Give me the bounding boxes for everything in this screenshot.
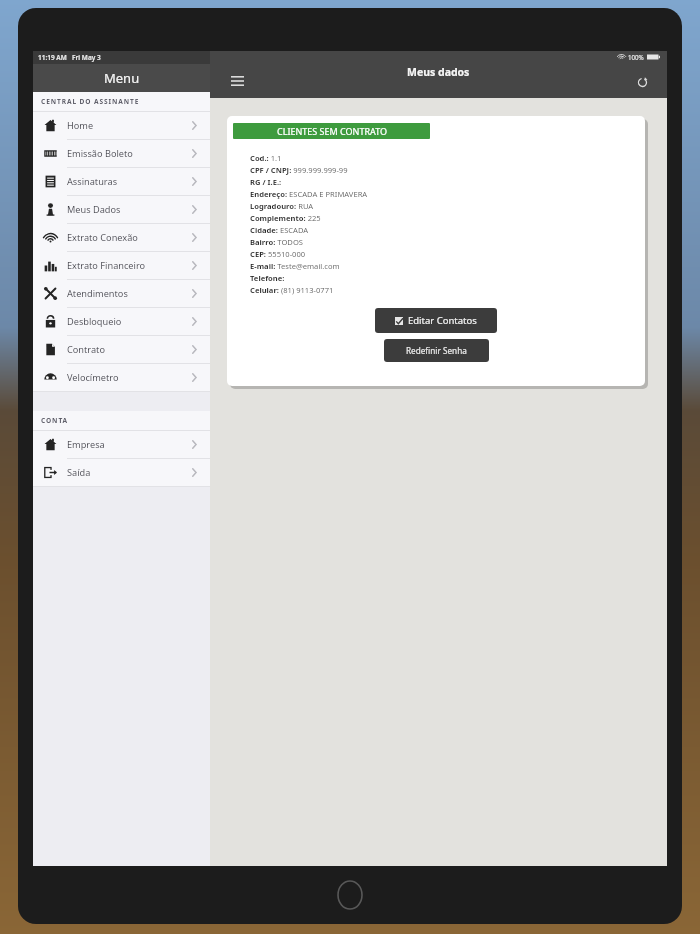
staticText: Saída xyxy=(67,466,91,479)
staticText: Atendimentos xyxy=(67,287,128,300)
staticText: CLIENTES SEM CONTRATO xyxy=(277,125,387,137)
staticText: Home xyxy=(67,119,94,132)
staticText: Empresa xyxy=(67,438,105,451)
button[interactable]: Emissão Boleto xyxy=(33,140,210,168)
staticText: 100% xyxy=(628,53,644,61)
button[interactable]: Menu xyxy=(226,70,248,92)
staticText: Menu xyxy=(104,69,140,87)
staticText: Desbloqueio xyxy=(67,315,122,328)
staticText: Meus Dados xyxy=(67,203,121,216)
button[interactable]: Empresa xyxy=(33,431,210,459)
button[interactable]: Assinaturas xyxy=(33,168,210,196)
staticText: Extrato Financeiro xyxy=(67,259,146,272)
staticText: 11:19 AM xyxy=(38,53,67,62)
staticText: Assinaturas xyxy=(67,175,118,188)
staticText: E-mail: Teste@email.com xyxy=(250,261,340,271)
staticText: Bairro: TODOS xyxy=(250,237,304,247)
staticText: Emissão Boleto xyxy=(67,147,133,160)
staticText: Fri May 3 xyxy=(72,53,101,62)
staticText: Telefone: xyxy=(250,273,285,283)
staticText: CONTA xyxy=(41,416,69,425)
staticText: Celular: (81) 9113-0771 xyxy=(250,285,334,295)
staticText: Cod.: 1.1 xyxy=(250,153,282,163)
staticText: Velocímetro xyxy=(67,371,119,384)
button[interactable]: Redefinir Senha xyxy=(384,339,489,362)
button[interactable]: Desbloqueio xyxy=(33,308,210,336)
staticText: Extrato Conexão xyxy=(67,231,138,244)
staticText: CPF / CNPJ: 999.999.999-99 xyxy=(250,165,348,175)
button[interactable]: Editar Contatos xyxy=(375,308,497,333)
button[interactable]: Meus Dados xyxy=(33,196,210,224)
staticText: Logradouro: RUA xyxy=(250,201,314,211)
staticText: Contrato xyxy=(67,343,105,356)
staticText: Editar Contatos xyxy=(408,314,477,327)
button[interactable]: Saída xyxy=(33,459,210,487)
button[interactable]: Velocímetro xyxy=(33,364,210,392)
staticText: Redefinir Senha xyxy=(406,345,467,356)
button[interactable]: Home xyxy=(33,112,210,140)
staticText: CENTRAL DO ASSINANTE xyxy=(41,97,140,106)
button[interactable]: Atendimentos xyxy=(33,280,210,308)
button[interactable]: Refresh xyxy=(631,71,653,93)
staticText: Cidade: ESCADA xyxy=(250,225,309,235)
staticText: Endereço: ESCADA E PRIMAVERA xyxy=(250,189,368,199)
button[interactable]: Extrato Conexão xyxy=(33,224,210,252)
button[interactable]: Extrato Financeiro xyxy=(33,252,210,280)
button[interactable]: Contrato xyxy=(33,336,210,364)
staticText: RG / I.E.: xyxy=(250,177,282,187)
staticText: CEP: 55510-000 xyxy=(250,249,306,259)
staticText: Meus dados xyxy=(407,65,470,79)
staticText: Complemento: 225 xyxy=(250,213,321,223)
